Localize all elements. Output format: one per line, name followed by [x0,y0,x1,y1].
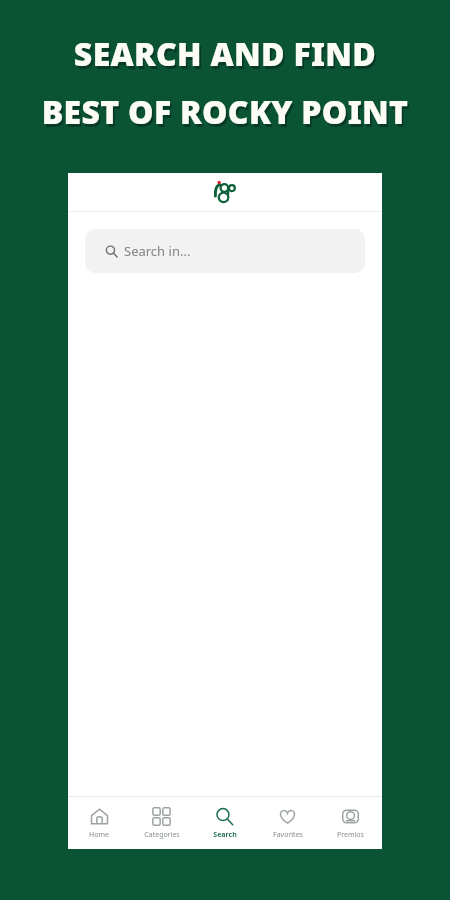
button[interactable]: Search [193,797,256,849]
staticText: Categories [144,830,180,840]
other: Favorites [278,807,297,826]
staticText: Home [89,830,109,840]
staticText: BEST OF ROCKY POINT [8,90,442,134]
staticText: Search in... [124,242,191,260]
staticText: Search [213,830,237,840]
staticText: BEST OF ROCKY POINT [10,93,444,137]
staticText: SEARCH AND FIND [10,35,444,79]
button[interactable]: Categories [130,797,193,849]
button[interactable]: Home [68,797,130,849]
staticText: Premios [337,830,364,840]
staticText: Favorites [273,830,303,840]
button[interactable]: Search in... [85,229,365,273]
button[interactable]: Favorites [256,797,319,849]
other: Categories [152,807,171,826]
button[interactable]: Premios [319,797,382,849]
other: Home [90,807,109,826]
staticText: SEARCH AND FIND [8,32,442,76]
other: Search [215,807,234,826]
other: Premios [341,807,360,826]
